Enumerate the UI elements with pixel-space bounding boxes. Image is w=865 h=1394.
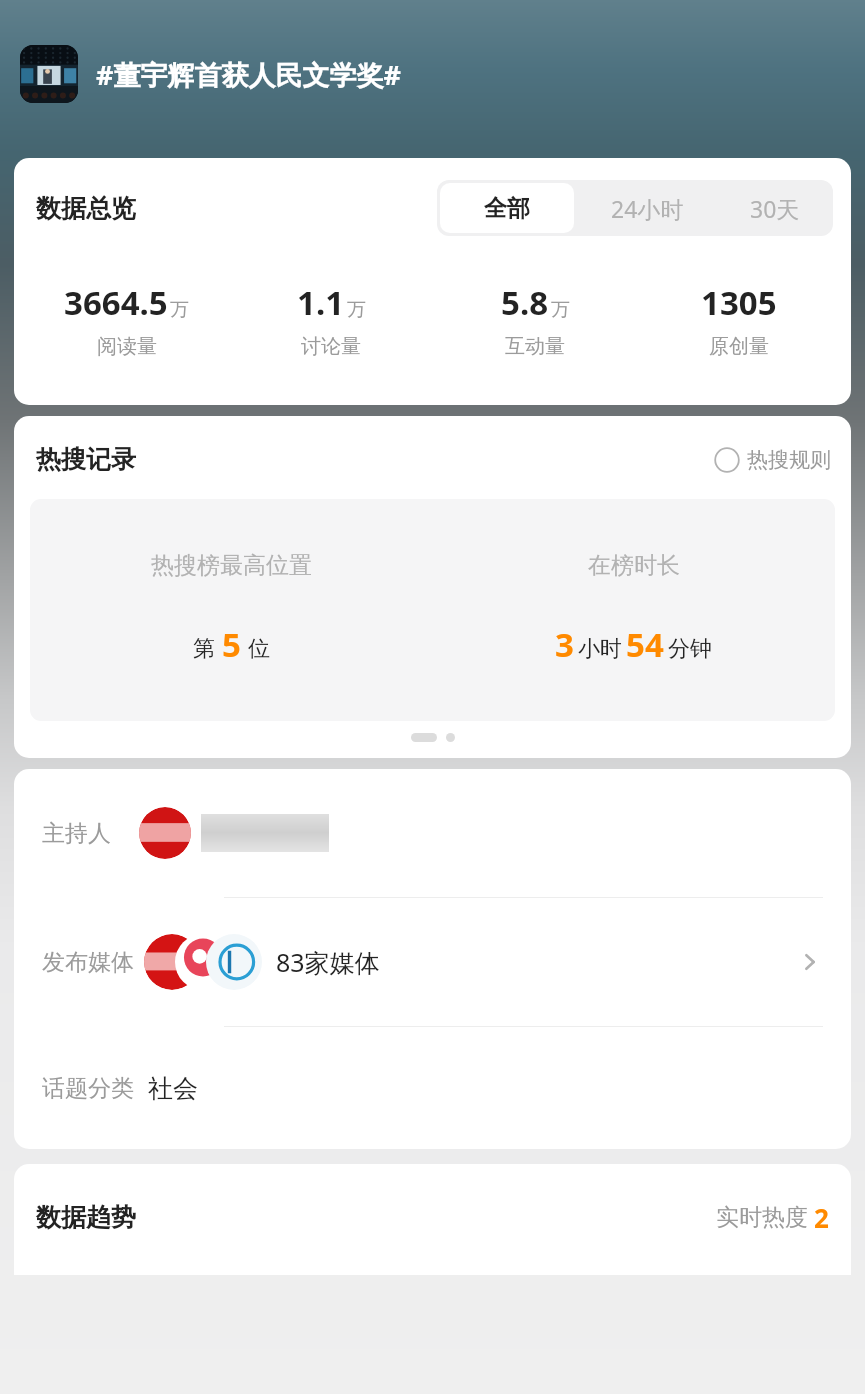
- staticText: 阅读量: [97, 334, 157, 359]
- staticText: 3664.5: [64, 280, 168, 325]
- staticText: 3: [555, 622, 574, 667]
- button[interactable]: 热搜规则: [714, 447, 831, 473]
- staticText: 数据趋势: [36, 1202, 136, 1233]
- staticText: 社会: [148, 1073, 198, 1104]
- staticText: 万: [170, 298, 189, 322]
- staticText: 83家媒体: [276, 945, 380, 979]
- staticText: 互动量: [505, 334, 565, 359]
- staticText: 1305: [701, 280, 777, 325]
- staticText: 热搜记录: [36, 444, 136, 475]
- staticText: 实时热度: [716, 1203, 808, 1232]
- button[interactable]: 全部: [440, 183, 574, 233]
- staticText: 30天: [750, 193, 800, 224]
- staticText: 5: [222, 622, 241, 667]
- staticText: 热搜规则: [747, 447, 831, 473]
- staticText: 热搜榜最高位置: [151, 551, 312, 580]
- button[interactable]: 24小时: [577, 180, 717, 236]
- staticText: #董宇辉首获人民文学奖#: [96, 56, 401, 93]
- staticText: 主持人: [42, 819, 111, 848]
- button[interactable]: 30天: [717, 180, 833, 236]
- staticText: 在榜时长: [588, 551, 680, 580]
- staticText: 万: [551, 298, 570, 322]
- staticText: 发布媒体: [42, 948, 134, 977]
- button[interactable]: 发布媒体: [42, 898, 823, 1026]
- staticText: 1.1: [297, 280, 345, 325]
- staticText: 原创量: [709, 334, 769, 359]
- staticText: 数据总览: [36, 193, 136, 224]
- staticText: 第: [193, 635, 215, 663]
- staticText: 话题分类: [42, 1074, 134, 1103]
- staticText: 万: [347, 298, 366, 322]
- staticText: 小时: [578, 635, 622, 663]
- staticText: 分钟: [668, 635, 712, 663]
- button[interactable]: 话题分类: [42, 1027, 823, 1149]
- button[interactable]: Topic image: [20, 45, 78, 103]
- staticText: 讨论量: [301, 334, 361, 359]
- staticText: 24小时: [611, 193, 684, 224]
- button[interactable]: 主持人: [42, 769, 823, 897]
- staticText: 位: [248, 635, 270, 663]
- other: More: [797, 949, 823, 975]
- staticText: 2: [814, 1200, 829, 1235]
- staticText: 全部: [484, 194, 530, 223]
- staticText: 54: [626, 622, 664, 667]
- staticText: 5.8: [501, 280, 549, 325]
